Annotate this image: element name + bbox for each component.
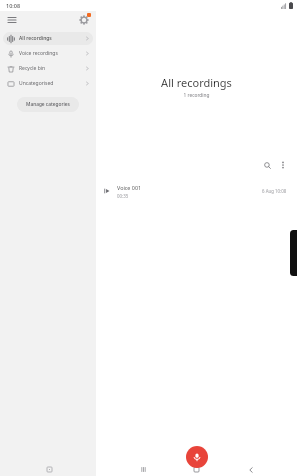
button[interactable]: Play Voice 001 <box>96 179 297 203</box>
staticText: Voice recordings <box>19 50 58 57</box>
button[interactable]: Voice recordings <box>3 47 93 60</box>
button[interactable]: Back <box>244 463 257 476</box>
button[interactable]: All recordings <box>3 32 93 45</box>
button[interactable]: Keyboard <box>44 464 54 474</box>
staticText: Manage categories <box>26 101 70 108</box>
staticText: 6 Aug 10:08 <box>262 188 287 194</box>
button[interactable]: Manage categories <box>17 97 79 112</box>
button[interactable]: Uncategorised <box>3 77 93 90</box>
staticText: Uncategorised <box>19 80 54 87</box>
button[interactable]: More options <box>277 159 289 171</box>
staticText: 10:08 <box>6 2 21 9</box>
button[interactable]: Recent apps <box>137 463 150 476</box>
staticText: 00:35 <box>117 193 129 199</box>
staticText: 1 recording <box>96 92 297 99</box>
button[interactable]: Edge panel handle <box>290 230 297 276</box>
staticText: All recordings <box>96 75 297 90</box>
staticText: Recycle bin <box>19 65 46 72</box>
button[interactable]: Record <box>186 446 208 468</box>
button[interactable]: Recycle bin <box>3 62 93 75</box>
button[interactable]: Menu <box>5 13 19 27</box>
button[interactable]: Settings <box>77 13 91 27</box>
button[interactable]: Play Voice 001 <box>102 186 112 196</box>
staticText: All recordings <box>19 35 52 42</box>
button[interactable]: Home <box>190 463 203 476</box>
staticText: Voice 001 <box>117 184 142 191</box>
button[interactable]: Search <box>261 159 273 171</box>
